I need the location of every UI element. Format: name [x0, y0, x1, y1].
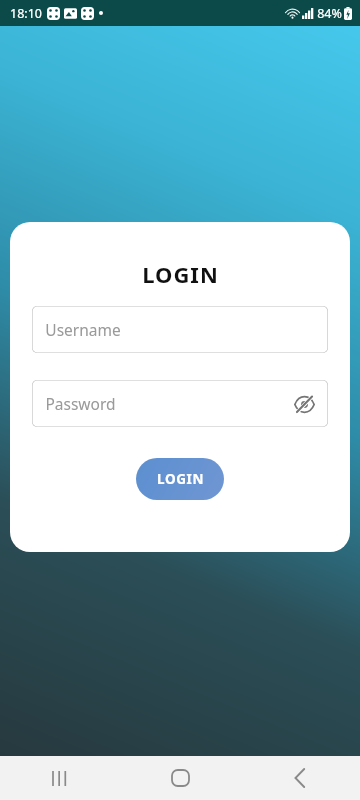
button[interactable]: Username	[32, 306, 328, 353]
staticText: 84%	[317, 5, 342, 22]
button[interactable]: Home	[140, 756, 220, 800]
button[interactable]: Back	[260, 756, 340, 800]
button[interactable]: Recent apps	[20, 756, 100, 800]
button[interactable]: Password	[32, 380, 328, 427]
staticText: 18:10	[10, 5, 42, 22]
staticText: LOGIN	[157, 470, 204, 488]
staticText: Username	[45, 319, 121, 340]
staticText: Password	[45, 393, 116, 414]
staticText: LOGIN	[142, 259, 219, 289]
button[interactable]: LOGIN	[136, 458, 224, 500]
button[interactable]: Show password	[288, 388, 320, 420]
